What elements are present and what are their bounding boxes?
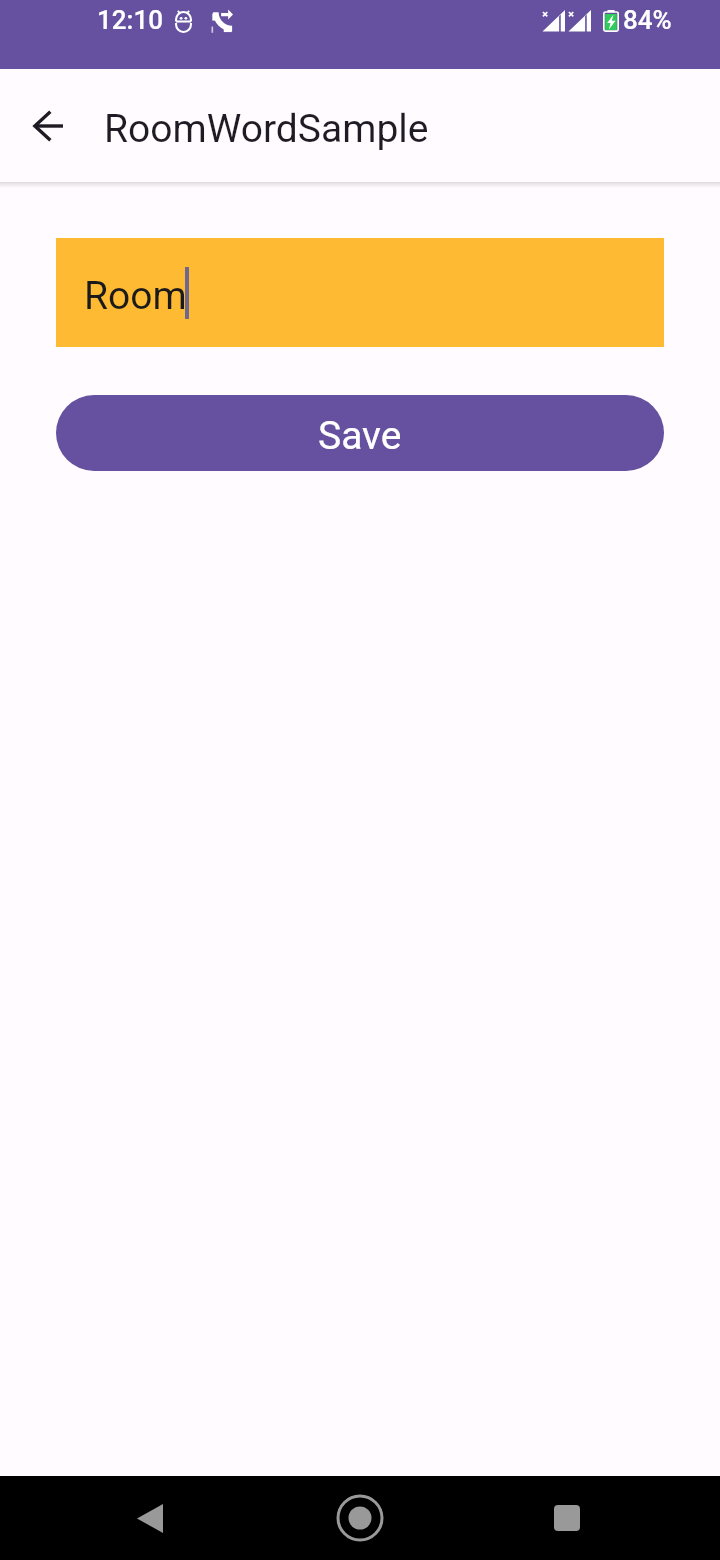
button[interactable]: Navigate up [0,69,96,182]
staticText: RoomWordSample [104,106,429,152]
staticText: 84% [623,5,672,35]
staticText: Room [84,273,187,319]
staticText: 12:10 [97,5,163,35]
button[interactable]: Home [313,1476,407,1560]
button[interactable]: Recent apps [520,1476,614,1560]
button[interactable]: Back [103,1476,197,1560]
button[interactable]: Save [56,395,664,471]
staticText: Save [318,413,402,459]
button[interactable]: Room [56,238,664,347]
